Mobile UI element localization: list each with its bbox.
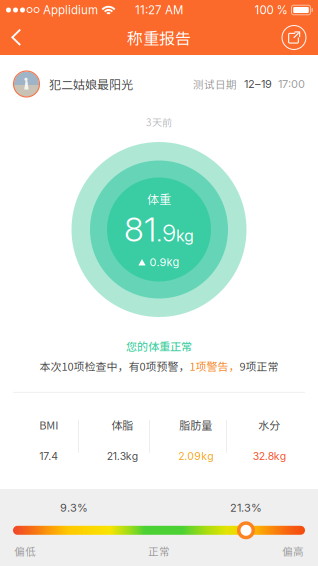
staticText: 9项正常 bbox=[239, 358, 278, 374]
staticText: 测试日期 bbox=[193, 76, 237, 92]
button[interactable]: Share bbox=[267, 19, 318, 55]
button[interactable]: Back bbox=[0, 20, 36, 55]
staticText: 21.3% bbox=[230, 501, 262, 514]
staticText: 3天前 bbox=[146, 115, 172, 129]
staticText: 17.4 bbox=[39, 450, 58, 462]
staticText: 脂肪量 bbox=[179, 417, 212, 433]
staticText: kg bbox=[176, 226, 194, 245]
staticText: 水分 bbox=[258, 417, 280, 433]
staticText: Applidium bbox=[43, 3, 98, 17]
staticText: 偏低 bbox=[14, 543, 36, 558]
staticText: 犯二姑娘最阳光 bbox=[49, 75, 133, 93]
staticText: 32.8kg bbox=[253, 450, 286, 462]
staticText: 100 % bbox=[254, 3, 287, 17]
staticText: 21.3kg bbox=[107, 450, 138, 462]
staticText: 0.9kg bbox=[150, 256, 180, 269]
staticText: 9.3% bbox=[60, 501, 88, 514]
staticText: 11:27 AM bbox=[135, 3, 183, 17]
staticText: 17:00 bbox=[278, 77, 305, 91]
staticText: 称重报告 bbox=[127, 26, 191, 49]
staticText: 您的体重正常 bbox=[126, 338, 192, 354]
staticText: 12–19 bbox=[244, 77, 272, 91]
staticText: 偏高 bbox=[282, 543, 304, 558]
staticText: .9 bbox=[156, 218, 176, 247]
staticText: BMI bbox=[39, 417, 58, 433]
staticText: 1项警告， bbox=[189, 358, 239, 374]
staticText: 2.09kg bbox=[178, 450, 213, 462]
staticText: 体重 bbox=[147, 190, 171, 207]
staticText: 正常 bbox=[148, 543, 170, 558]
staticText: 体脂 bbox=[111, 417, 133, 433]
staticText: 81 bbox=[124, 208, 156, 250]
staticText: 本次10项检查中，有0项预警， bbox=[39, 358, 189, 374]
